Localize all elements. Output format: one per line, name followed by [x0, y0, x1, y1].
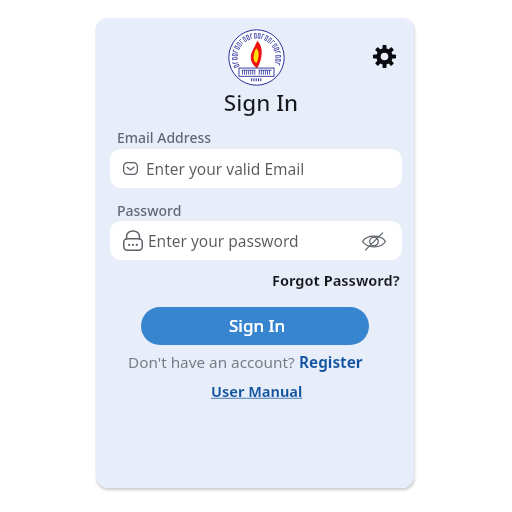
button[interactable]: Register: [299, 352, 363, 373]
button[interactable]: Enter your valid Email: [110, 149, 402, 188]
staticText: User Manual: [211, 381, 303, 401]
staticText: Register: [299, 352, 363, 373]
button[interactable]: Settings: [370, 42, 398, 70]
button[interactable]: Forgot Password?: [268, 266, 404, 294]
button[interactable]: Show password: [360, 227, 388, 255]
staticText: Sign In: [229, 314, 286, 337]
staticText: Enter your valid Email: [146, 158, 305, 179]
staticText: Password: [117, 201, 182, 220]
button[interactable]: Sign In: [141, 307, 369, 345]
button[interactable]: User Manual: [207, 378, 307, 404]
button[interactable]: Enter your password: [110, 221, 402, 260]
staticText: Sign In: [102, 87, 414, 118]
staticText: Email Address: [117, 128, 212, 147]
staticText: Forgot Password?: [272, 270, 400, 290]
staticText: Enter your password: [148, 230, 299, 251]
staticText: Don't have an account?: [128, 352, 299, 373]
